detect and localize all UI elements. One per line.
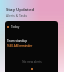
staticText: Stay Updated bbox=[6, 7, 35, 13]
staticText: Alerts & Tasks bbox=[6, 14, 28, 18]
button[interactable]: Today bbox=[7, 25, 58, 29]
staticText: No new alerts bbox=[22, 60, 42, 64]
staticText: Today bbox=[11, 25, 20, 29]
staticText: Team standup bbox=[7, 39, 28, 43]
staticText: 9:30 AM reminder bbox=[7, 44, 33, 48]
